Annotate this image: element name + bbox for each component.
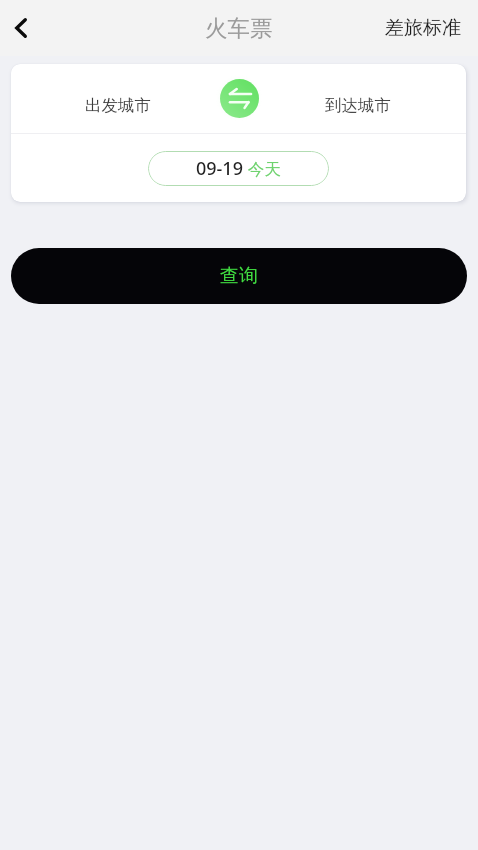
button[interactable]: 出发城市 xyxy=(11,64,215,133)
button[interactable]: Back xyxy=(0,7,42,49)
staticText: 火车票 xyxy=(205,14,273,42)
button[interactable]: Swap departure and arrival cities xyxy=(220,79,259,118)
button[interactable]: 09-19 今天 xyxy=(148,151,329,186)
staticText: 差旅标准 xyxy=(385,16,461,40)
button[interactable]: 到达城市 xyxy=(261,64,466,133)
staticText: 到达城市 xyxy=(325,95,391,116)
staticText: 出发城市 xyxy=(85,95,151,116)
staticText: 查询 xyxy=(220,264,258,288)
button[interactable]: 查询 xyxy=(11,248,467,304)
button[interactable]: 差旅标准 xyxy=(385,16,461,40)
staticText: 09-19 今天 xyxy=(196,156,281,181)
